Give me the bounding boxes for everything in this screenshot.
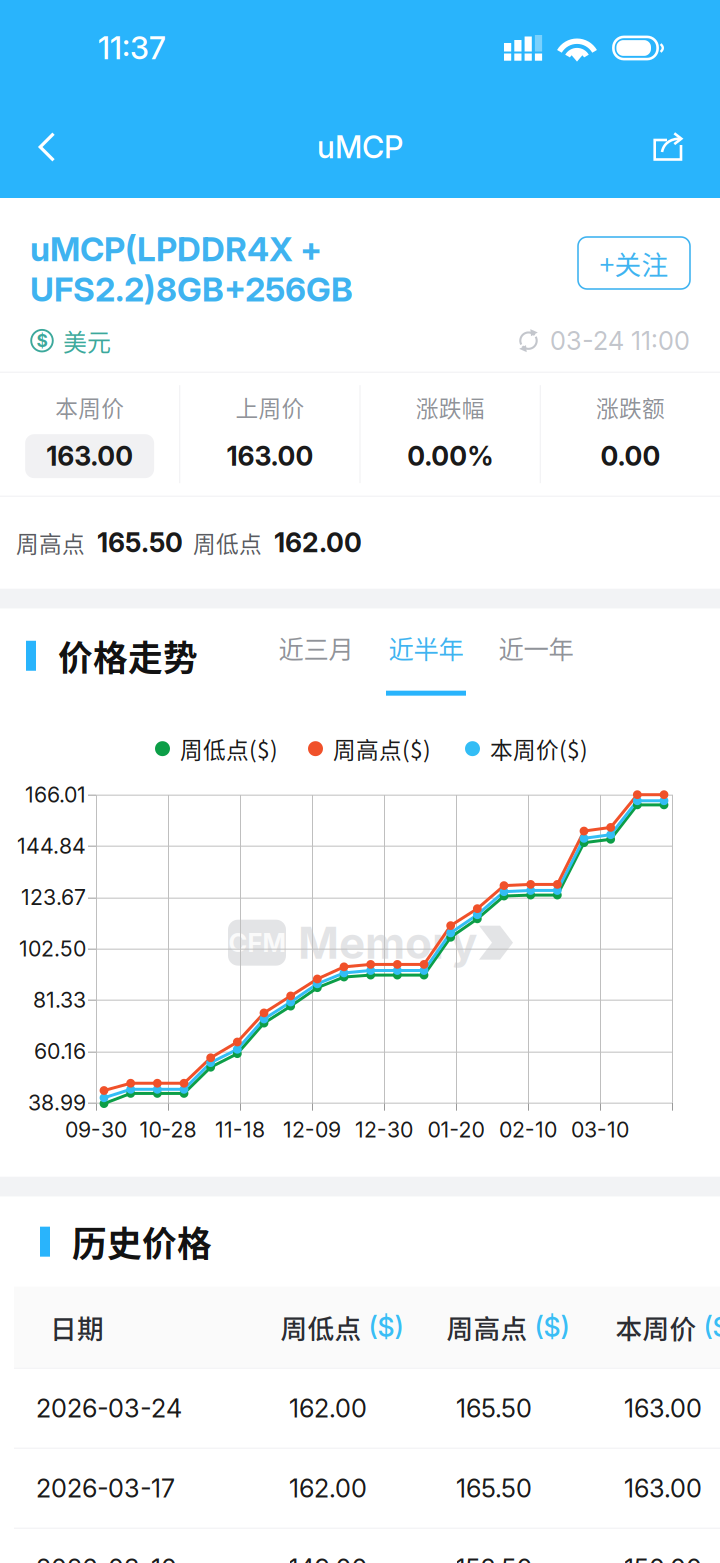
staticText: 周高点($) — [333, 732, 431, 765]
staticText: 美元 — [63, 323, 111, 358]
button[interactable]: Back — [3, 102, 91, 192]
staticText: uMCP(LPDDR4X + UFS2.2)8GB+256GB — [30, 229, 353, 310]
staticText: ($) — [368, 1311, 403, 1343]
staticText: 150.00 — [624, 1553, 702, 1563]
staticText: 周低点 — [193, 526, 262, 559]
staticText: 166.01 — [25, 782, 86, 808]
staticText: 本周价($) — [490, 732, 588, 765]
staticText: CFM — [228, 927, 285, 958]
staticText: 01-20 — [427, 1117, 484, 1143]
staticText: 163.00 — [624, 1393, 702, 1423]
staticText: 03-10 — [571, 1117, 629, 1143]
staticText: 123.67 — [21, 884, 86, 910]
staticText: 81.33 — [33, 987, 86, 1013]
staticText: 149.00 — [288, 1553, 367, 1563]
staticText: 162.00 — [289, 1393, 367, 1423]
staticText: 价格走势 — [58, 631, 198, 681]
staticText: 60.16 — [34, 1038, 86, 1064]
staticText: 近一年 — [498, 629, 573, 666]
staticText: 周高点 — [16, 526, 85, 559]
button[interactable]: +关注 — [578, 237, 690, 289]
staticText: ($) — [703, 1311, 720, 1343]
staticText: 163.00 — [46, 440, 133, 472]
staticText: 10-28 — [139, 1117, 196, 1143]
staticText: 日期 — [50, 1308, 104, 1346]
staticText: 09-30 — [65, 1117, 127, 1143]
staticText: 涨跌幅 — [416, 391, 485, 424]
staticText: 上周价 — [235, 391, 304, 424]
staticText: 102.50 — [19, 936, 86, 962]
staticText: 11:37 — [98, 29, 166, 66]
staticText: 周低点($) — [180, 732, 278, 765]
staticText: 165.50 — [97, 526, 183, 559]
button[interactable]: 近半年 — [382, 609, 470, 699]
staticText: 涨跌额 — [596, 391, 665, 424]
staticText: 162.00 — [274, 526, 362, 559]
staticText: 12-09 — [283, 1117, 341, 1143]
staticText: 152.50 — [455, 1553, 532, 1563]
button[interactable]: 近三月 — [272, 609, 360, 699]
staticText: 2026-03-10 — [36, 1553, 177, 1563]
staticText: Memory — [298, 916, 477, 969]
staticText: 0.00 — [600, 440, 660, 472]
staticText: 本周价 — [55, 391, 124, 424]
staticText: 0.00% — [407, 440, 493, 472]
staticText: 近半年 — [388, 629, 463, 666]
button[interactable]: 近一年 — [492, 609, 580, 699]
staticText: 11-18 — [215, 1117, 265, 1143]
staticText: ($) — [534, 1311, 569, 1343]
staticText: 周低点 — [280, 1308, 361, 1346]
staticText: 163.00 — [624, 1473, 702, 1503]
button[interactable]: Share — [624, 102, 712, 192]
staticText: 2026-03-24 — [36, 1393, 182, 1423]
staticText: $ — [36, 330, 47, 351]
staticText: 本周价 — [615, 1308, 696, 1346]
staticText: 144.84 — [17, 833, 86, 859]
staticText: 165.50 — [456, 1473, 532, 1503]
staticText: 163.00 — [226, 440, 313, 472]
staticText: 2026-03-17 — [36, 1473, 175, 1503]
staticText: 38.99 — [28, 1090, 86, 1116]
staticText: 12-30 — [355, 1117, 413, 1143]
staticText: 02-10 — [499, 1117, 557, 1143]
staticText: uMCP — [317, 128, 403, 165]
staticText: 165.50 — [456, 1393, 532, 1423]
staticText: 03-24 11:00 — [550, 325, 690, 356]
staticText: 近三月 — [278, 629, 353, 666]
staticText: 周高点 — [446, 1308, 527, 1346]
staticText: 历史价格 — [72, 1217, 212, 1267]
staticText: +关注 — [599, 244, 668, 282]
staticText: 162.00 — [289, 1473, 367, 1503]
